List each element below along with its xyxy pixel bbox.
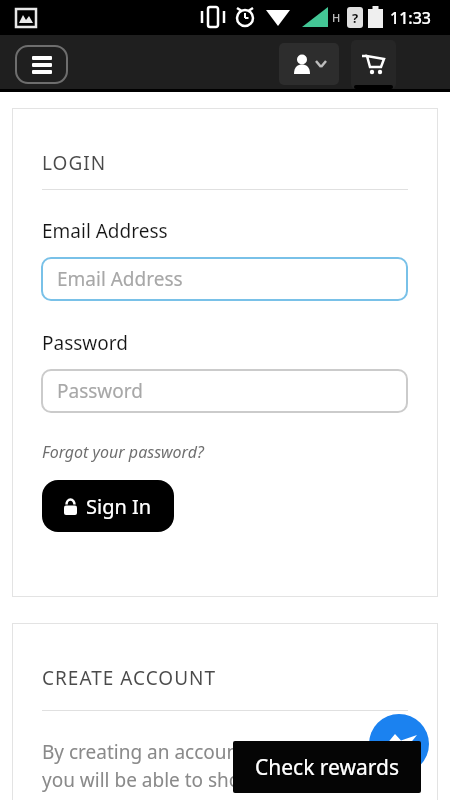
- button[interactable]: Check rewards: [233, 741, 421, 793]
- staticText: Sign In: [86, 493, 152, 520]
- staticText: Email Address: [57, 266, 183, 292]
- staticText: By creating an account you will be able …: [42, 739, 253, 800]
- staticText: ?: [352, 9, 359, 27]
- button[interactable]: [351, 40, 396, 89]
- staticText: Email Address: [42, 218, 168, 244]
- staticText: H: [332, 10, 341, 25]
- staticText: LOGIN: [42, 150, 107, 176]
- button[interactable]: [15, 45, 68, 84]
- button[interactable]: Sign In: [42, 480, 174, 532]
- button[interactable]: [369, 714, 429, 774]
- button[interactable]: [279, 43, 339, 85]
- button[interactable]: Password: [41, 369, 408, 413]
- staticText: Password: [57, 378, 143, 404]
- button[interactable]: Email Address: [41, 257, 408, 301]
- staticText: 11:33: [390, 7, 431, 29]
- staticText: CREATE ACCOUNT: [42, 665, 217, 691]
- button[interactable]: Forgot your password?: [42, 441, 204, 463]
- staticText: Password: [42, 330, 128, 356]
- staticText: Check rewards: [255, 753, 400, 782]
